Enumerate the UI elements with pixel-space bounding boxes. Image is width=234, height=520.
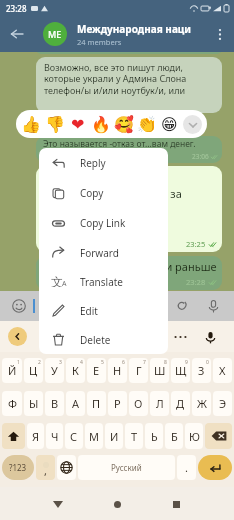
button[interactable]: И xyxy=(105,423,123,449)
staticText: Delete xyxy=(80,333,111,347)
staticText: , xyxy=(44,463,47,478)
staticText: 23:25 xyxy=(186,239,206,249)
button[interactable]: Back xyxy=(46,492,70,516)
button[interactable]: Х xyxy=(213,358,232,383)
button[interactable]: Voice message xyxy=(202,295,224,317)
staticText: Forward xyxy=(80,246,119,260)
button[interactable]: Home xyxy=(105,492,129,516)
button[interactable]: Щ xyxy=(171,358,190,383)
staticText: A xyxy=(62,279,67,289)
button[interactable]: Л xyxy=(150,391,169,416)
staticText: 9 xyxy=(185,359,188,366)
button[interactable]: Enter xyxy=(198,455,232,480)
button[interactable]: Previous xyxy=(8,327,27,346)
staticText: Ь xyxy=(151,429,158,444)
button[interactable]: Б xyxy=(165,423,183,449)
button[interactable]: Comma and emoji xyxy=(36,455,55,480)
button[interactable]: Ф xyxy=(2,391,22,416)
staticText: Я xyxy=(32,429,40,444)
button[interactable]: С xyxy=(65,423,83,449)
staticText: 24 members xyxy=(77,37,122,47)
button[interactable]: Е xyxy=(87,358,106,383)
staticText: Edit xyxy=(80,304,98,318)
button[interactable]: К xyxy=(66,358,85,383)
button[interactable]: А xyxy=(66,391,85,416)
staticText: Ж xyxy=(197,396,207,411)
button[interactable]: Й xyxy=(2,358,22,383)
button[interactable]: Delete xyxy=(39,325,168,354)
button[interactable]: 👍 xyxy=(19,110,43,138)
staticText: Щ xyxy=(175,363,187,378)
button[interactable]: М xyxy=(85,423,103,449)
button[interactable]: Ч xyxy=(46,423,63,449)
button[interactable]: Ь xyxy=(145,423,163,449)
button[interactable]: Shift xyxy=(2,423,25,449)
staticText: 7 xyxy=(143,359,146,366)
button[interactable]: У xyxy=(45,358,64,383)
button[interactable]: Reply xyxy=(39,148,168,178)
staticText: 23:06 xyxy=(192,152,209,161)
button[interactable]: Я xyxy=(27,423,44,449)
button[interactable]: Н xyxy=(108,358,127,383)
staticText: Х xyxy=(219,363,226,378)
staticText: П xyxy=(92,396,101,411)
button[interactable]: Copy Link xyxy=(39,208,168,238)
staticText: 文 xyxy=(51,274,63,287)
button[interactable]: З xyxy=(192,358,211,383)
button[interactable]: Back xyxy=(0,17,34,51)
button[interactable]: ❤ xyxy=(66,110,89,138)
staticText: Не потеряешь то, чего нет. Поборешь за т… xyxy=(44,170,182,252)
staticText: Т xyxy=(131,429,138,444)
button[interactable]: Э xyxy=(213,391,232,416)
button[interactable]: More xyxy=(170,327,190,347)
button[interactable]: 🔥 xyxy=(89,110,112,138)
button[interactable]: Д xyxy=(171,391,190,416)
staticText: С xyxy=(70,429,78,444)
button[interactable]: Forward xyxy=(39,238,168,267)
staticText: Почему вы не написали раньше про карту ? xyxy=(44,259,217,290)
button[interactable]: Emoji xyxy=(9,296,29,316)
button[interactable]: More options xyxy=(206,20,234,48)
button[interactable]: Русский xyxy=(78,455,175,480)
button[interactable]: Ш xyxy=(150,358,169,383)
staticText: ❤ xyxy=(71,115,85,134)
staticText: М xyxy=(89,429,99,444)
staticText: 0 xyxy=(206,359,209,366)
button[interactable]: Ы xyxy=(24,391,43,416)
button[interactable]: Backspace xyxy=(205,423,232,449)
button[interactable]: В xyxy=(45,391,64,416)
button[interactable]: Voice input xyxy=(200,327,220,347)
button[interactable]: . xyxy=(177,455,196,480)
button[interactable]: Р xyxy=(108,391,127,416)
button[interactable]: 👎 xyxy=(43,110,66,138)
staticText: 5 xyxy=(101,359,104,366)
button[interactable]: Recent apps xyxy=(164,492,188,516)
button[interactable]: 👏 xyxy=(135,110,158,138)
button[interactable]: Г xyxy=(129,358,148,383)
button[interactable]: Ж xyxy=(192,391,211,416)
button[interactable]: Ю xyxy=(185,423,203,449)
button[interactable]: П xyxy=(87,391,106,416)
staticText: 😁 xyxy=(161,115,178,134)
staticText: 👍 xyxy=(21,115,41,134)
staticText: Г xyxy=(136,363,142,378)
staticText: ME xyxy=(48,28,62,40)
button[interactable]: Attach xyxy=(170,295,192,317)
button[interactable]: Symbols xyxy=(2,455,34,480)
staticText: Н xyxy=(113,363,122,378)
button[interactable]: Т xyxy=(125,423,143,449)
button[interactable]: Change language xyxy=(57,455,76,480)
staticText: З xyxy=(198,363,205,378)
button[interactable]: 🥰 xyxy=(112,110,135,138)
staticText: Ц xyxy=(29,363,38,378)
button[interactable]: Ц xyxy=(24,358,43,383)
button[interactable]: О xyxy=(129,391,148,416)
staticText: Р xyxy=(114,396,121,411)
button[interactable]: Edit xyxy=(39,296,168,325)
button[interactable]: 文 xyxy=(39,267,168,296)
button[interactable]: More reactions xyxy=(181,110,204,138)
button[interactable]: 😁 xyxy=(158,110,181,138)
staticText: Ю xyxy=(189,429,200,444)
button[interactable]: Copy xyxy=(39,178,168,208)
staticText: Й xyxy=(8,363,17,378)
